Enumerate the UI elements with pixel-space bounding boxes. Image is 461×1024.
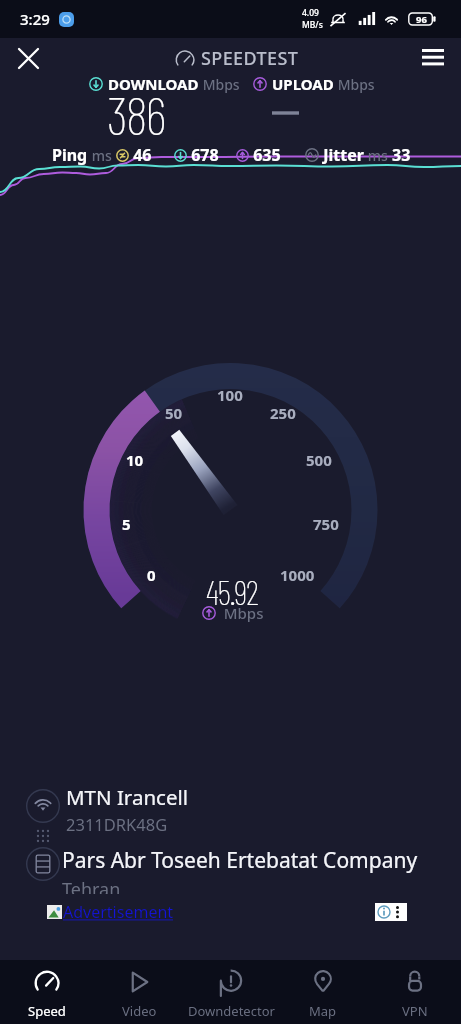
staticText: 3:29 xyxy=(20,9,50,29)
staticText: MB/s xyxy=(302,19,323,31)
staticText: ms xyxy=(364,146,392,165)
staticText: 100 xyxy=(217,385,243,405)
staticText: 10 xyxy=(126,450,144,470)
staticText: 750 xyxy=(313,514,339,534)
staticText: 250 xyxy=(270,403,296,423)
staticText: 1000 xyxy=(280,565,315,585)
staticText: Video xyxy=(122,1002,157,1020)
staticText: 678 xyxy=(187,144,219,166)
staticText: DOWNLOAD xyxy=(108,74,199,94)
staticText: Tehran xyxy=(62,877,121,894)
button[interactable]: VPN xyxy=(369,960,461,1024)
staticText: 4.09 xyxy=(302,7,319,19)
staticText: 46 xyxy=(129,144,152,166)
staticText: Pars Abr Toseeh Ertebatat Company xyxy=(62,846,418,875)
staticText: 0 xyxy=(147,565,156,585)
button[interactable]: Map xyxy=(277,960,369,1024)
button[interactable]: Close xyxy=(8,38,48,78)
button[interactable]: MTN Irancell xyxy=(0,784,461,830)
staticText: Downdetector xyxy=(188,1002,275,1020)
staticText: 500 xyxy=(306,450,332,470)
staticText: 5 xyxy=(122,514,131,534)
button[interactable]: DOWNLOAD xyxy=(89,74,240,94)
staticText: 50 xyxy=(165,403,183,423)
staticText: Jitter xyxy=(319,144,364,166)
button[interactable]: Video xyxy=(93,960,185,1024)
staticText: ms xyxy=(88,146,116,165)
staticText: Speed xyxy=(28,1002,66,1020)
staticText: 2311DRK48G xyxy=(66,813,168,831)
button[interactable]: Ad choices xyxy=(375,903,407,921)
staticText: Ping xyxy=(52,144,88,166)
staticText: Mbps xyxy=(199,75,240,94)
button[interactable]: 635 xyxy=(236,144,281,166)
staticText: VPN xyxy=(402,1002,428,1020)
staticText: 386 xyxy=(107,82,165,146)
staticText: SPEEDTEST xyxy=(201,46,299,71)
button[interactable]: Pars Abr Toseeh Ertebatat Company xyxy=(0,846,461,892)
staticText: Mbps xyxy=(216,603,264,623)
staticText: 45.92 xyxy=(206,571,258,612)
staticText: MTN Irancell xyxy=(66,783,189,811)
button[interactable]: Downdetector xyxy=(185,960,277,1024)
button[interactable]: Menu xyxy=(414,38,452,76)
staticText: Mbps xyxy=(334,75,375,94)
button[interactable]: 678 xyxy=(174,144,219,166)
staticText: UPLOAD xyxy=(272,74,334,94)
button[interactable]: Jitter xyxy=(305,144,411,166)
button[interactable]: Ping xyxy=(52,144,152,166)
button[interactable]: UPLOAD xyxy=(253,74,375,94)
staticText: 33 xyxy=(392,144,411,166)
staticText: Advertisement xyxy=(63,901,174,923)
button[interactable]: Advertisement xyxy=(47,901,174,923)
staticText: Map xyxy=(309,1002,337,1020)
staticText: 96 xyxy=(416,13,427,26)
staticText: 635 xyxy=(249,144,281,166)
button[interactable]: Speed xyxy=(0,960,93,1024)
